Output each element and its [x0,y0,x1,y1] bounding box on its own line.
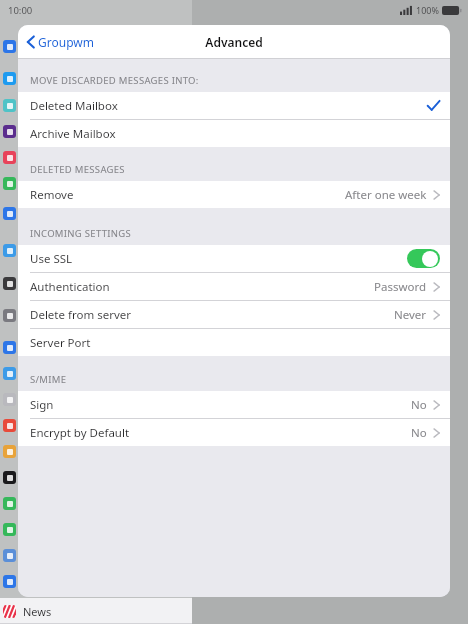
button[interactable]: Use SSL toggle [407,249,440,268]
staticText: No [411,425,427,441]
staticText: S/MIME [30,373,67,386]
staticText: INCOMING SETTINGS [30,227,132,240]
staticText: No [411,397,427,413]
staticText: DELETED MESSAGES [30,163,125,176]
button[interactable]: Authentication [18,273,450,301]
staticText: Authentication [30,279,110,295]
staticText: After one week [345,187,427,203]
staticText: Delete from server [30,307,131,323]
button[interactable]: Remove [18,181,450,208]
staticText: 100% [416,4,439,16]
staticText: News [23,604,52,619]
button[interactable]: Delete from server [18,301,450,329]
staticText: Encrypt by Default [30,425,130,441]
staticText: Remove [30,187,74,203]
staticText: Groupwm [38,34,94,50]
button[interactable]: Server Port [18,329,450,356]
button[interactable]: Deleted Mailbox [18,92,450,120]
button[interactable]: Use SSL [18,245,450,273]
staticText: Advanced [205,34,263,50]
button[interactable]: Sign [18,391,450,419]
staticText: Deleted Mailbox [30,98,118,114]
button[interactable]: Archive Mailbox [18,120,450,147]
staticText: Server Port [30,335,91,351]
button[interactable]: Encrypt by Default [18,419,450,446]
staticText: MOVE DISCARDED MESSAGES INTO: [30,74,199,87]
staticText: Archive Mailbox [30,126,116,142]
staticText: Never [394,307,427,323]
staticText: 10:00 [8,4,33,17]
button[interactable]: Groupwm [24,30,97,54]
staticText: Sign [30,397,54,413]
staticText: Password [374,279,427,295]
staticText: Use SSL [30,251,73,267]
